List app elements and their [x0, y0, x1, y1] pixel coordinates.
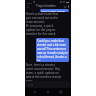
button[interactable]: Home: [45, 89, 51, 95]
button[interactable]: Back: [32, 89, 38, 95]
button[interactable]: Back: [26, 5, 29, 8]
button[interactable]: Could you make that shorter and a bit mo…: [36, 38, 69, 62]
staticText: Project timeline: [36, 4, 56, 8]
staticText: Write a team update note: [41, 9, 68, 12]
staticText: 9:41: [27, 1, 32, 4]
button[interactable]: More options: [67, 5, 70, 8]
button[interactable]: Share: [63, 5, 66, 8]
button[interactable]: Write a team update note: [40, 9, 69, 12]
staticText: Here's a short note that you can send ou…: [26, 12, 63, 36]
button[interactable]: [26, 81, 70, 88]
staticText: Could you make that shorter and a bit mo…: [37, 39, 68, 61]
staticText: Sure, here's a shorter, more casual vers…: [26, 63, 63, 87]
button[interactable]: Recent apps: [58, 89, 64, 95]
